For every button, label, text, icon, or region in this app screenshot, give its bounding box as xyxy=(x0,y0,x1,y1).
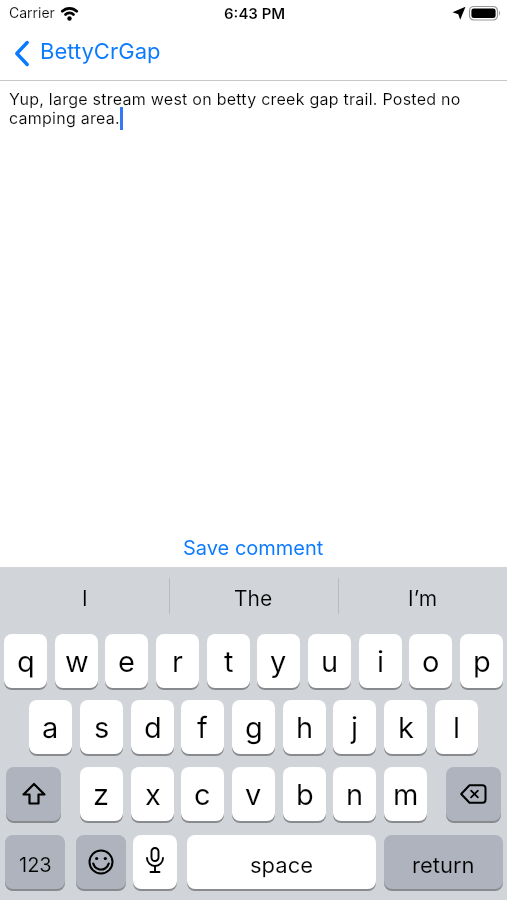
button[interactable]: return xyxy=(384,835,503,889)
staticText: Yup, large stream west on betty creek ga… xyxy=(9,89,461,108)
button[interactable]: w xyxy=(55,634,98,688)
button[interactable]: s xyxy=(80,700,123,754)
staticText: f xyxy=(197,710,208,745)
button[interactable]: m xyxy=(384,767,427,821)
button[interactable]: v xyxy=(232,767,275,821)
staticText: v xyxy=(245,777,262,812)
staticText: e xyxy=(118,644,135,679)
staticText: z xyxy=(93,777,110,812)
staticText: k xyxy=(398,710,414,745)
button[interactable]: r xyxy=(156,634,199,688)
button[interactable]: o xyxy=(409,634,452,688)
staticText: q xyxy=(17,644,35,679)
button[interactable]: d xyxy=(131,700,174,754)
button[interactable] xyxy=(446,767,501,821)
staticText: d xyxy=(144,710,162,745)
button[interactable]: q xyxy=(4,634,47,688)
staticText: j xyxy=(351,710,359,745)
button[interactable]: k xyxy=(384,700,427,754)
staticText: return xyxy=(412,852,475,879)
button[interactable]: 123 xyxy=(5,835,65,889)
button[interactable]: I’m xyxy=(338,577,507,619)
button[interactable]: h xyxy=(283,700,326,754)
button[interactable]: l xyxy=(435,700,478,754)
button[interactable] xyxy=(133,835,177,889)
button[interactable]: g xyxy=(232,700,275,754)
button[interactable]: n xyxy=(333,767,376,821)
staticText: 123 xyxy=(19,853,52,877)
staticText: u xyxy=(321,644,339,679)
staticText: g xyxy=(245,710,263,745)
button[interactable]: e xyxy=(105,634,148,688)
button[interactable]: f xyxy=(181,700,224,754)
button[interactable]: j xyxy=(333,700,376,754)
button[interactable]: p xyxy=(460,634,503,688)
staticText: Save comment xyxy=(183,536,324,560)
staticText: n xyxy=(346,777,364,812)
staticText: c xyxy=(194,777,211,812)
staticText: l xyxy=(453,710,461,745)
staticText: a xyxy=(42,710,59,745)
button[interactable]: Save comment xyxy=(0,536,507,560)
button[interactable]: a xyxy=(29,700,72,754)
staticText: 6:43 PM xyxy=(224,4,286,22)
staticText: p xyxy=(473,644,491,679)
staticText: w xyxy=(65,644,89,679)
staticText: h xyxy=(296,710,314,745)
button[interactable]: i xyxy=(359,634,402,688)
staticText: The xyxy=(234,586,273,611)
button[interactable] xyxy=(6,767,61,821)
button[interactable]: BettyCrGap xyxy=(40,38,161,65)
button[interactable]: I xyxy=(0,577,169,619)
button[interactable]: x xyxy=(131,767,174,821)
staticText: s xyxy=(94,710,110,745)
staticText: i xyxy=(377,644,385,679)
staticText: x xyxy=(145,777,161,812)
staticText: o xyxy=(422,644,440,679)
staticText: I xyxy=(82,586,88,611)
button[interactable]: b xyxy=(283,767,326,821)
button[interactable] xyxy=(76,835,126,889)
staticText: space xyxy=(250,852,314,879)
staticText: t xyxy=(224,644,234,679)
staticText: camping area. xyxy=(9,108,120,127)
button[interactable]: c xyxy=(181,767,224,821)
staticText: r xyxy=(172,644,183,679)
button[interactable]: t xyxy=(207,634,250,688)
button[interactable]: The xyxy=(169,577,338,619)
staticText: y xyxy=(270,644,287,679)
staticText: I’m xyxy=(408,586,438,611)
button[interactable]: space xyxy=(187,835,376,889)
staticText: Carrier xyxy=(9,4,55,21)
button[interactable]: y xyxy=(257,634,300,688)
staticText: m xyxy=(393,777,419,812)
staticText: b xyxy=(296,777,314,812)
button[interactable] xyxy=(15,41,29,66)
button[interactable]: z xyxy=(80,767,123,821)
button[interactable]: u xyxy=(308,634,351,688)
